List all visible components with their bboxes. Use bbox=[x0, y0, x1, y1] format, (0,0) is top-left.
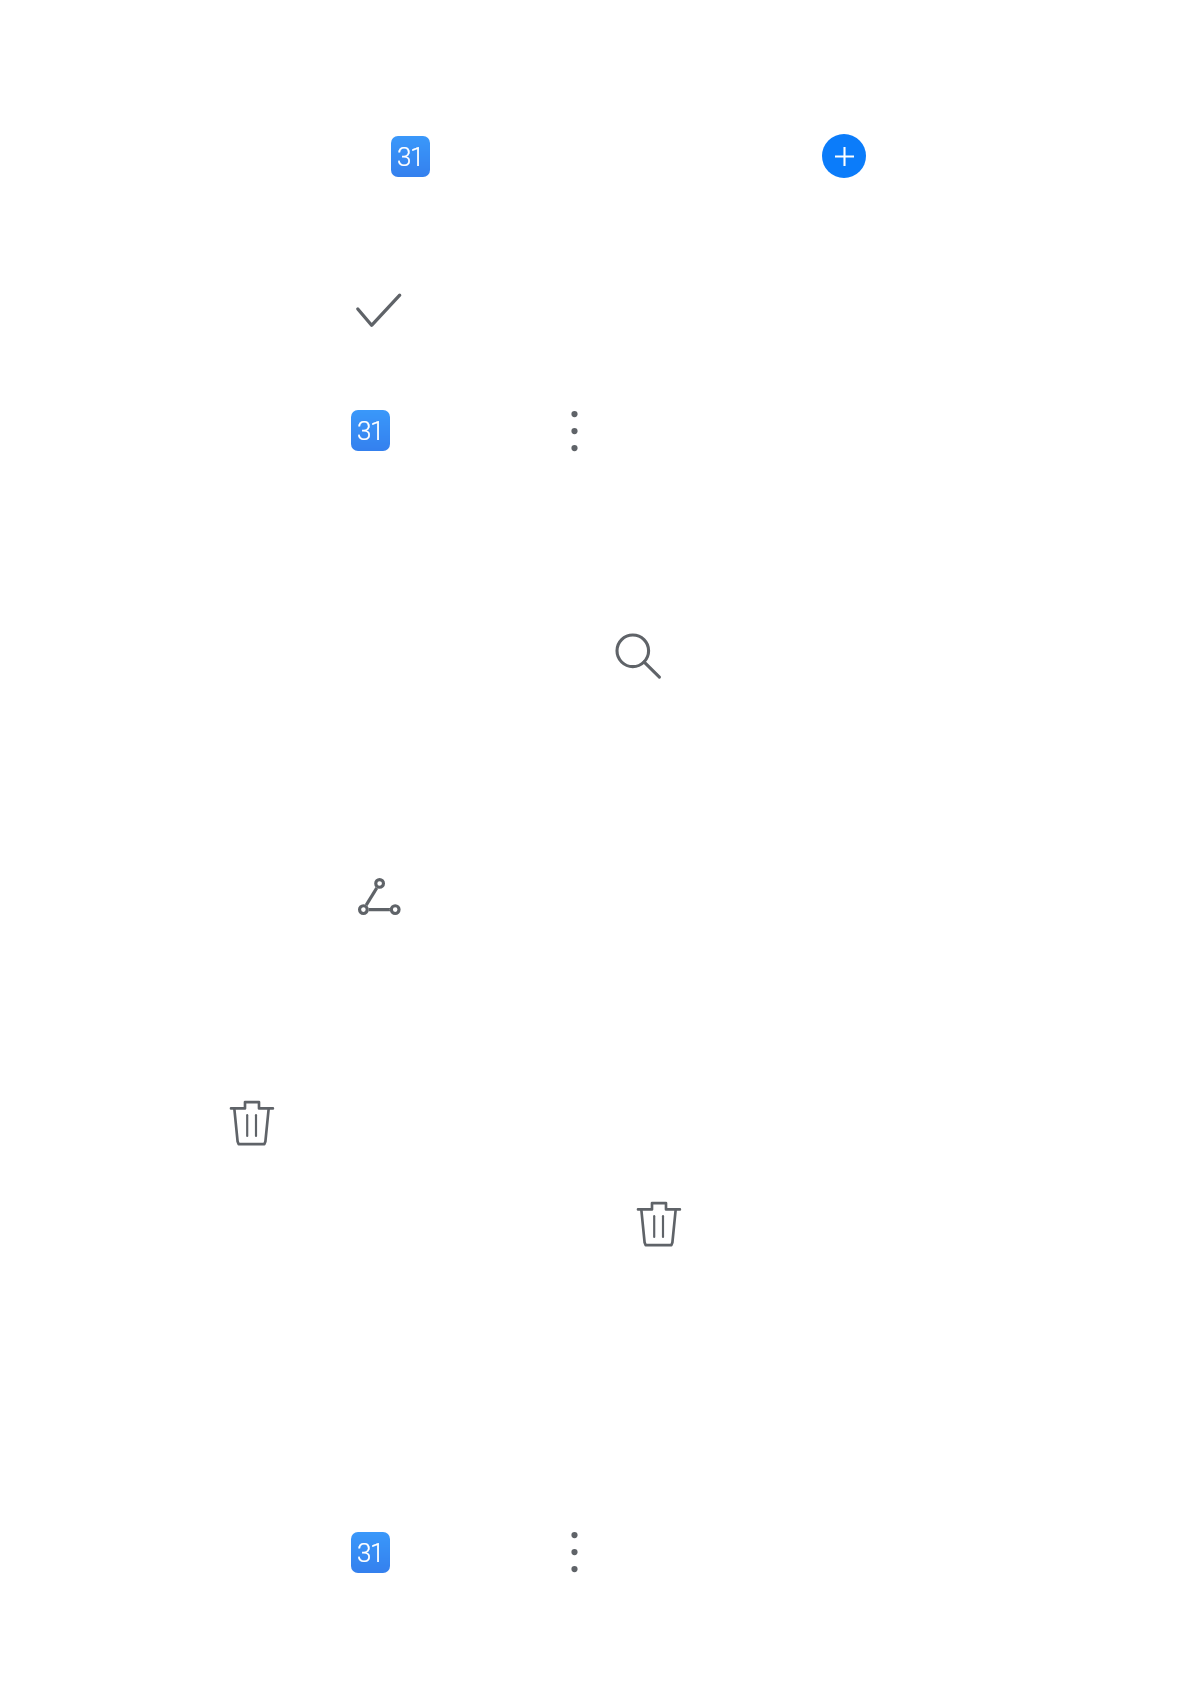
button[interactable]: Done bbox=[356, 292, 402, 327]
button[interactable]: Calendar, day 31 bbox=[391, 136, 430, 177]
button[interactable]: More options bbox=[565, 411, 584, 451]
button[interactable]: More options bbox=[565, 1532, 584, 1572]
staticText: 31 bbox=[357, 416, 384, 446]
staticText: 31 bbox=[357, 1538, 384, 1568]
button[interactable]: Calendar, day 31 bbox=[351, 410, 390, 451]
button[interactable]: Add bbox=[822, 134, 866, 178]
button[interactable]: Search bbox=[614, 632, 663, 681]
button[interactable]: Share bbox=[358, 878, 401, 916]
button[interactable]: Delete bbox=[230, 1100, 274, 1146]
button[interactable]: Delete bbox=[637, 1201, 681, 1247]
button[interactable]: Calendar, day 31 bbox=[351, 1532, 390, 1573]
staticText: 31 bbox=[397, 142, 424, 172]
